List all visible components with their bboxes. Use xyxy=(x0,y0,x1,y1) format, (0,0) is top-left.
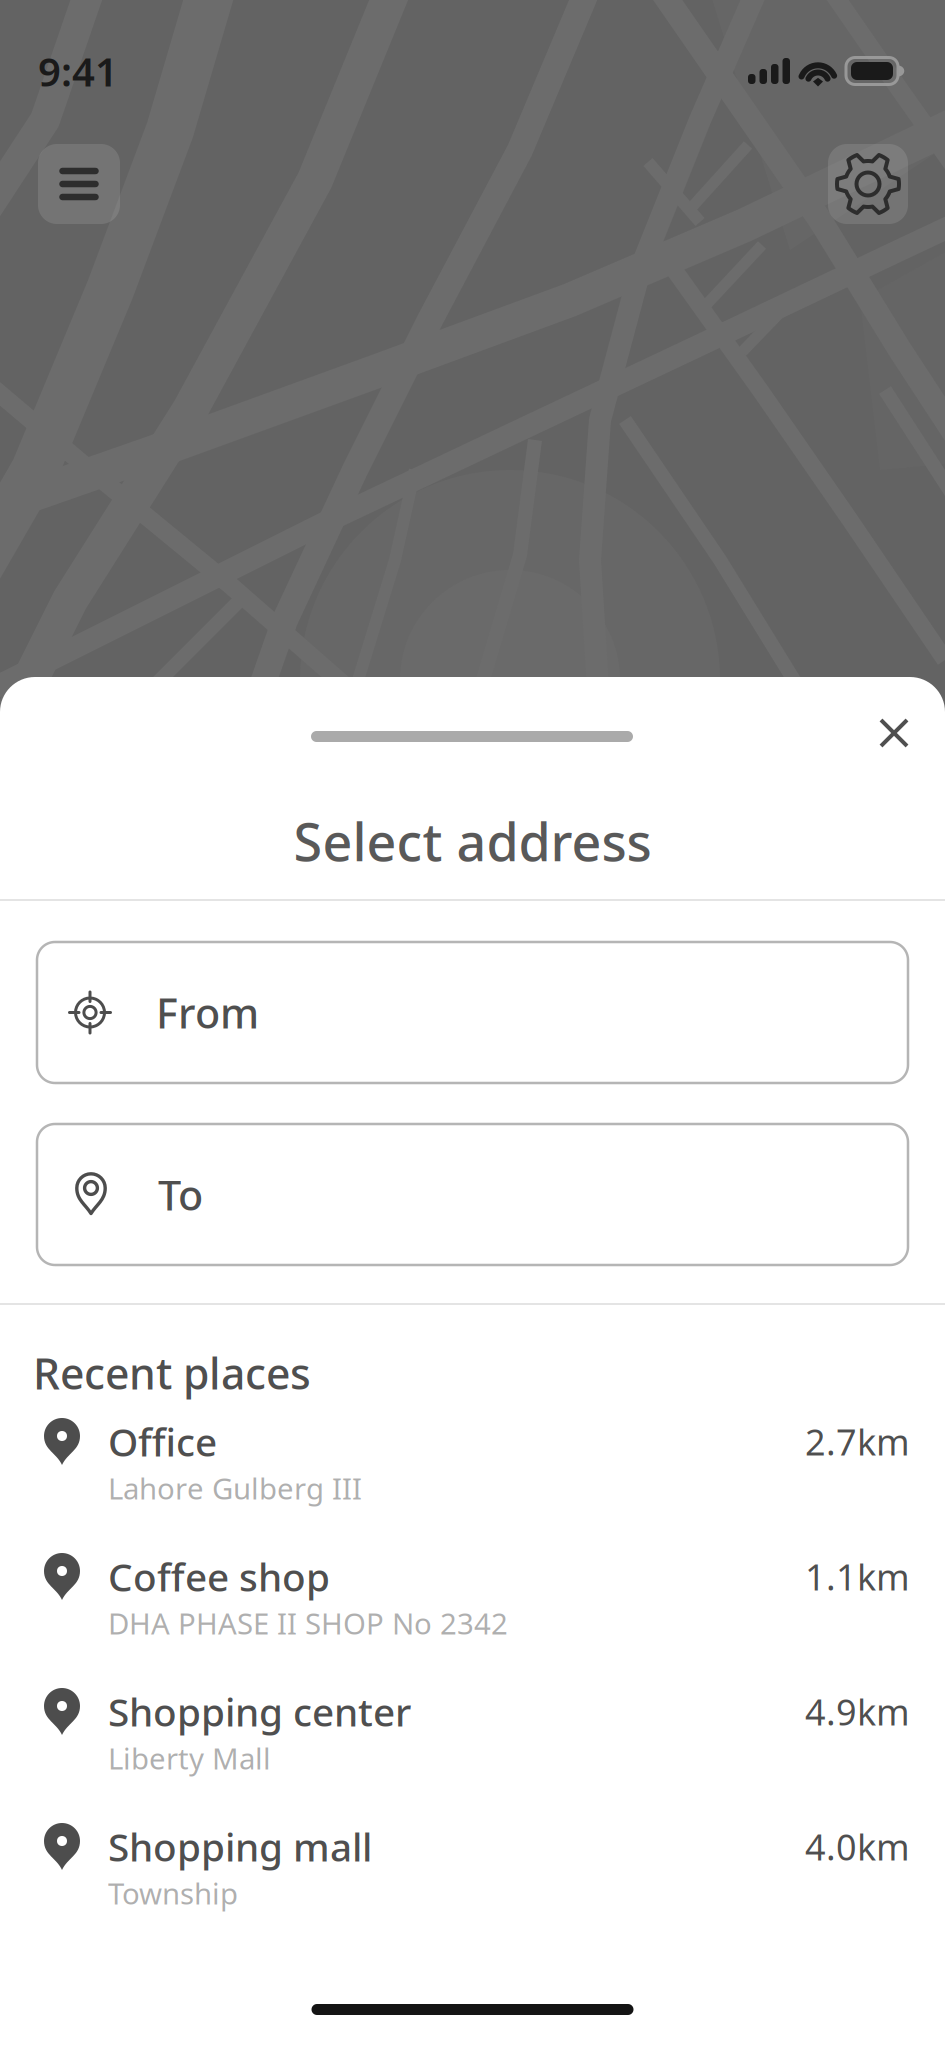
staticText: Shopping center xyxy=(108,1686,411,1737)
staticText: 9:41 xyxy=(38,44,118,97)
button[interactable]: To xyxy=(37,1124,908,1265)
staticText: Lahore Gulberg III xyxy=(108,1468,362,1507)
staticText: 2.7km xyxy=(805,1418,910,1465)
button[interactable]: Settings xyxy=(828,144,908,224)
button[interactable]: Office xyxy=(0,1414,945,1549)
staticText: 4.0km xyxy=(805,1823,910,1870)
staticText: Recent places xyxy=(33,1345,311,1401)
button[interactable]: Close xyxy=(863,702,925,764)
staticText: 1.1km xyxy=(805,1553,910,1600)
button[interactable]: Menu xyxy=(38,144,120,224)
button[interactable]: Coffee shop xyxy=(0,1549,945,1684)
staticText: 4.9km xyxy=(805,1688,910,1735)
staticText: To xyxy=(158,1167,203,1222)
staticText: Shopping mall xyxy=(108,1821,372,1872)
button[interactable]: From xyxy=(37,942,908,1083)
staticText: Coffee shop xyxy=(108,1551,330,1602)
button[interactable]: Shopping center xyxy=(0,1684,945,1819)
button[interactable]: Shopping mall xyxy=(0,1819,945,1954)
staticText: Office xyxy=(108,1416,217,1467)
staticText: Township xyxy=(108,1873,238,1912)
staticText: Select address xyxy=(293,806,651,876)
staticText: DHA PHASE II SHOP No 2342 xyxy=(108,1603,508,1642)
staticText: Liberty Mall xyxy=(108,1738,271,1777)
staticText: From xyxy=(156,985,259,1040)
